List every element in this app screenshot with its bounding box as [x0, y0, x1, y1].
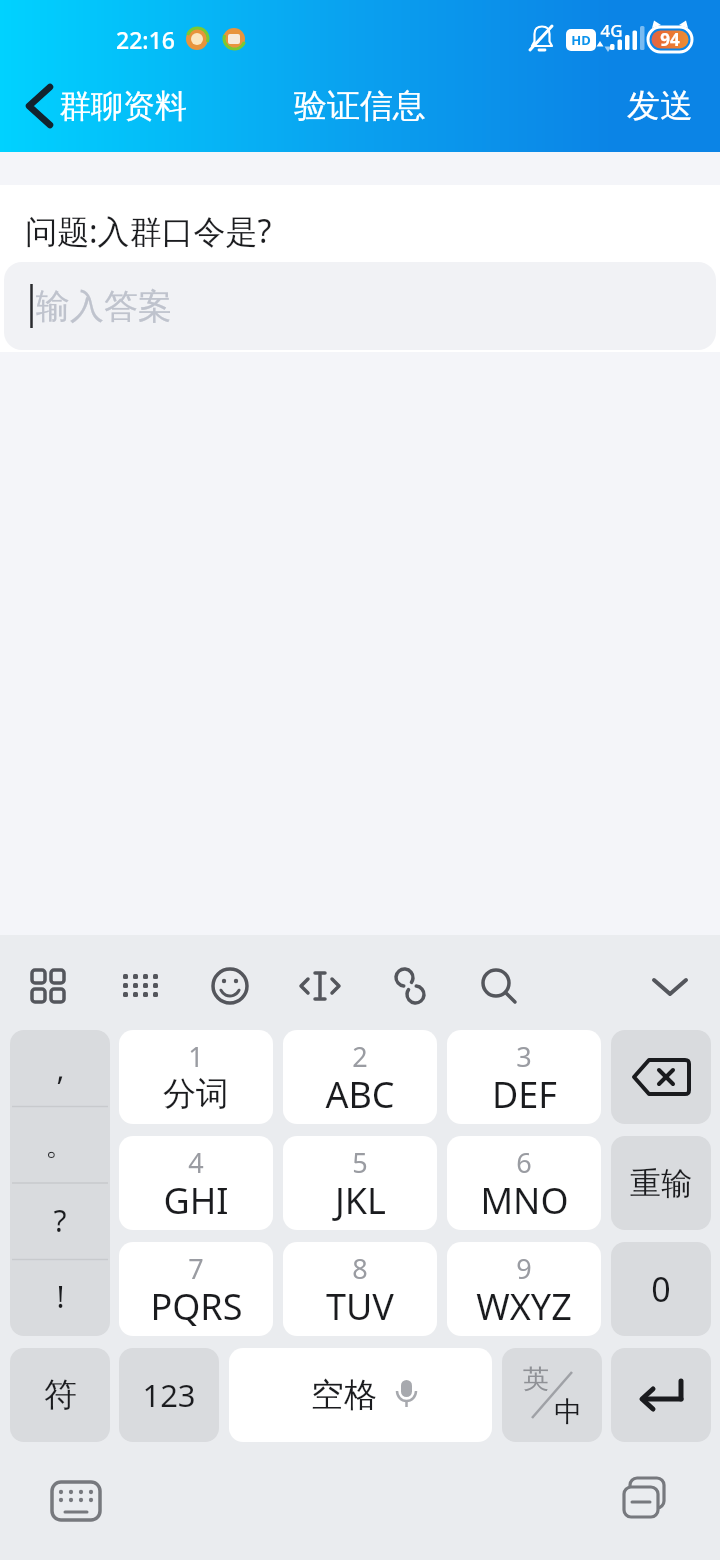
staticText: 重输 — [630, 1164, 692, 1203]
staticText: 0 — [651, 1266, 671, 1312]
staticText: 。 — [45, 1126, 75, 1164]
staticText: 7 — [188, 1250, 204, 1284]
staticText: 5 — [352, 1144, 368, 1178]
staticText: 输入答案 — [36, 285, 172, 328]
staticText: 94 — [660, 28, 680, 51]
staticText: 中 — [554, 1394, 582, 1429]
staticText: HD — [571, 31, 591, 49]
staticText: DEF — [492, 1070, 557, 1119]
button[interactable]: 空格 — [229, 1348, 492, 1442]
button[interactable] — [644, 960, 696, 1012]
button[interactable]: 群聊资料 — [59, 84, 209, 128]
staticText: ? — [53, 1200, 67, 1241]
button[interactable] — [611, 1348, 711, 1442]
staticText: 群聊资料 — [59, 86, 187, 126]
button[interactable]: 5 — [283, 1136, 437, 1230]
staticText: MNO — [480, 1176, 569, 1225]
staticText: 英 — [523, 1363, 549, 1396]
button[interactable]: 1 — [119, 1030, 273, 1124]
staticText: ABC — [325, 1070, 395, 1119]
staticText: 123 — [142, 1374, 196, 1416]
button[interactable]: ! — [10, 1258, 110, 1335]
staticText: 2 — [352, 1038, 368, 1072]
button[interactable]: 输入答案 — [4, 262, 716, 350]
button[interactable] — [294, 960, 346, 1012]
staticText: 符 — [44, 1374, 77, 1416]
button[interactable]: 8 — [283, 1242, 437, 1336]
button[interactable]: , — [10, 1030, 110, 1107]
staticText: PQRS — [150, 1282, 243, 1331]
button[interactable]: ? — [10, 1182, 110, 1259]
staticText: ! — [56, 1276, 65, 1317]
button[interactable] — [618, 1474, 674, 1526]
button[interactable]: 2 — [283, 1030, 437, 1124]
staticText: GHI — [163, 1176, 229, 1225]
button[interactable] — [384, 960, 436, 1012]
button[interactable] — [48, 1474, 104, 1526]
button[interactable]: 发送 — [616, 84, 704, 128]
staticText: 6 — [516, 1144, 532, 1178]
staticText: 验证信息 — [294, 85, 426, 127]
staticText: 发送 — [627, 85, 693, 127]
staticText: 4 — [188, 1144, 204, 1178]
button[interactable]: 符 — [10, 1348, 110, 1442]
staticText: JKL — [335, 1176, 386, 1225]
button[interactable]: 0 — [611, 1242, 711, 1336]
button[interactable] — [204, 960, 256, 1012]
button[interactable] — [473, 960, 525, 1012]
staticText: 8 — [352, 1250, 368, 1284]
button[interactable]: 6 — [447, 1136, 601, 1230]
staticText: 分词 — [163, 1073, 229, 1115]
button[interactable]: 7 — [119, 1242, 273, 1336]
button[interactable] — [22, 960, 74, 1012]
staticText: 3 — [516, 1038, 532, 1072]
staticText: 空格 — [311, 1374, 377, 1416]
staticText: 22:16 — [116, 24, 175, 55]
button[interactable]: 123 — [119, 1348, 219, 1442]
button[interactable]: 。 — [10, 1106, 110, 1183]
button[interactable] — [611, 1030, 711, 1124]
staticText: 问题:入群口令是? — [25, 209, 272, 253]
staticText: 4G — [600, 19, 623, 41]
button[interactable]: 9 — [447, 1242, 601, 1336]
button[interactable]: 3 — [447, 1030, 601, 1124]
button[interactable]: 4 — [119, 1136, 273, 1230]
button[interactable] — [16, 80, 64, 132]
staticText: TUV — [326, 1282, 394, 1331]
button[interactable] — [114, 960, 166, 1012]
staticText: 9 — [516, 1250, 532, 1284]
button[interactable]: 重输 — [611, 1136, 711, 1230]
staticText: WXYZ — [476, 1282, 572, 1331]
button[interactable]: 英 — [502, 1348, 602, 1442]
staticText: 1 — [188, 1038, 204, 1072]
staticText: , — [56, 1048, 65, 1089]
